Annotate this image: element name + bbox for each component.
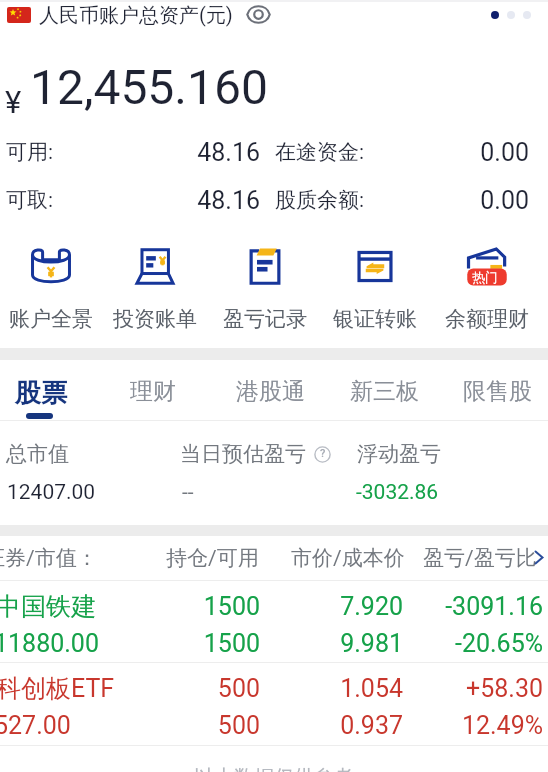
staticText: 527.00 — [0, 711, 71, 740]
staticText: 48.16 — [40, 138, 260, 167]
staticText: ¥ — [5, 84, 22, 120]
staticText: 余额理财 — [445, 306, 529, 332]
button[interactable]: 股票 — [0, 377, 91, 427]
staticText: 科创板ETF — [0, 673, 115, 704]
staticText: 投资账单 — [113, 306, 197, 332]
staticText: 人民币账户总资产(元) — [39, 3, 233, 28]
button[interactable]: 账户全景 — [0, 240, 105, 332]
staticText: 0.00 — [309, 138, 529, 167]
button[interactable]: 银证转账 — [321, 240, 429, 332]
staticText: -3091.16 — [323, 592, 543, 621]
button[interactable]: 理财 — [103, 377, 203, 427]
button[interactable]: 投资账单 — [101, 240, 209, 332]
button[interactable]: 余额理财 — [433, 240, 541, 332]
staticText: 港股通 — [236, 377, 305, 406]
staticText: 银证转账 — [333, 306, 417, 332]
staticText: 500 — [40, 674, 260, 703]
staticText: 新三板 — [350, 377, 419, 406]
button[interactable]: 以上数据仅供参考 — [0, 765, 548, 772]
button[interactable]: 限售股 — [447, 377, 547, 427]
staticText: 市价/成本价 — [291, 545, 405, 571]
staticText: 1.054 — [183, 674, 403, 703]
staticText: 当日预估盈亏 — [180, 441, 306, 467]
button[interactable]: 新三板 — [334, 377, 434, 427]
button[interactable]: 人民币账户总资产(元) — [0, 1, 548, 29]
button[interactable]: 盈亏记录 — [211, 240, 319, 332]
staticText: -20.65% — [323, 629, 543, 658]
staticText: 盈亏/盈亏比 — [423, 545, 537, 571]
staticText: 12407.00 — [7, 480, 96, 505]
button[interactable]: 中国铁建 — [0, 581, 548, 662]
staticText: 12,455.160 — [30, 59, 268, 115]
staticText: 总市值 — [6, 441, 69, 467]
staticText: 11880.00 — [0, 629, 99, 658]
button[interactable]: 科创板ETF — [0, 663, 548, 744]
staticText: 0.00 — [309, 186, 529, 215]
button[interactable]: 港股通 — [220, 377, 320, 427]
staticText: 理财 — [130, 377, 176, 406]
staticText: 12.49% — [323, 711, 543, 740]
staticText: 48.16 — [40, 186, 260, 215]
staticText: 可用: — [6, 139, 54, 165]
staticText: 1500 — [40, 592, 260, 621]
staticText: 账户全景 — [9, 306, 93, 332]
staticText: 持仓/可用 — [166, 545, 259, 571]
staticText: 0.937 — [183, 711, 403, 740]
staticText: 股质余额: — [275, 187, 365, 213]
staticText: ? — [320, 447, 326, 460]
staticText: 500 — [40, 711, 260, 740]
staticText: 股票 — [15, 377, 67, 410]
staticText: 9.981 — [183, 629, 403, 658]
staticText: 热门 — [472, 269, 498, 285]
staticText: -3032.86 — [356, 480, 439, 505]
button[interactable]: Toggle amount visibility — [243, 1, 273, 27]
staticText: -- — [182, 480, 194, 505]
staticText: 7.920 — [183, 592, 403, 621]
staticText: 可取: — [6, 187, 54, 213]
staticText: 限售股 — [463, 377, 532, 406]
staticText: 1500 — [40, 629, 260, 658]
staticText: 在途资金: — [275, 139, 365, 165]
staticText: 盈亏记录 — [223, 306, 307, 332]
staticText: 证券/市值： — [0, 545, 98, 571]
staticText: 中国铁建 — [0, 591, 96, 622]
staticText: 浮动盈亏 — [357, 441, 441, 467]
staticText: 以上数据仅供参考 — [194, 765, 354, 772]
staticText: +58.30 — [323, 674, 543, 703]
button[interactable]: Help about estimated profit — [314, 446, 331, 463]
